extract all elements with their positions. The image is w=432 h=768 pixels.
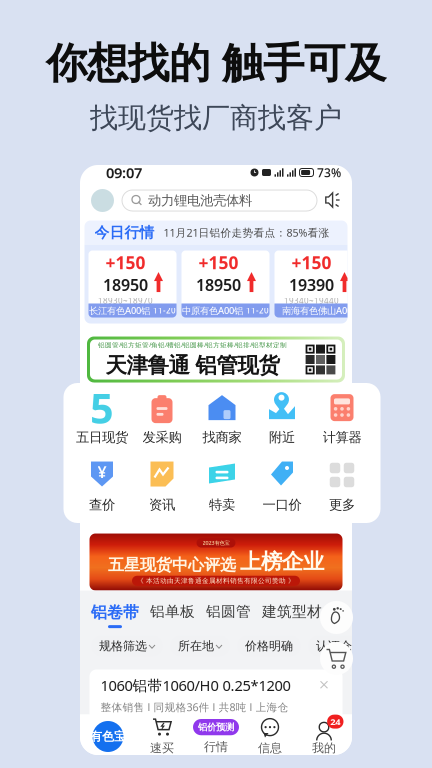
staticText: 更多 — [329, 496, 355, 513]
button[interactable]: 5 — [72, 393, 132, 445]
staticText: 找商家 — [202, 429, 241, 445]
button[interactable]: 铝圆管 — [206, 602, 251, 620]
button[interactable]: 特卖 — [192, 460, 252, 513]
staticText: +150 — [198, 251, 238, 274]
staticText: 1060铝带1060/H0 0.25*1200 — [100, 675, 290, 695]
button[interactable]: ¥ — [72, 460, 132, 513]
button[interactable]: 价格明确 — [237, 635, 301, 656]
staticText: 有色宝 — [90, 729, 126, 744]
button[interactable]: 更多 — [312, 460, 372, 513]
button[interactable]: 有色宝 — [81, 715, 135, 757]
staticText: 所在地 — [178, 639, 214, 653]
staticText: 找现货找厂商找客户 — [90, 101, 342, 135]
button[interactable]: 信息 — [243, 715, 297, 757]
staticText: 附近 — [269, 429, 295, 445]
button[interactable]: 铝单板 — [150, 602, 195, 620]
staticText: 09:07 — [106, 163, 142, 182]
staticText: 18950 — [103, 274, 148, 295]
staticText: 11-20 — [246, 305, 269, 316]
staticText: 上榜企业 — [240, 548, 324, 575]
button[interactable]: +150 — [88, 250, 176, 317]
staticText: 速买 — [150, 741, 174, 755]
staticText: +150 — [105, 251, 145, 274]
staticText: 2023有色宝 — [202, 539, 229, 546]
staticText: 中原有色A00铝 — [182, 304, 243, 317]
staticText: 特卖 — [209, 496, 235, 513]
staticText: 你想找的 触手可及 — [46, 38, 386, 89]
staticText: 5 — [90, 380, 114, 435]
staticText: 长江有色A00铝 — [89, 304, 150, 317]
button[interactable]: 速买 — [135, 715, 189, 757]
staticText: 认证仓 — [316, 639, 352, 653]
button[interactable]: 一口价 — [252, 460, 312, 513]
button[interactable]: 动力锂电池壳体料 — [122, 190, 317, 211]
staticText: 价格明确 — [245, 639, 293, 653]
staticText: 我的 — [312, 741, 336, 755]
staticText: 规格筛选 — [99, 639, 147, 653]
staticText: 行情 — [204, 739, 228, 754]
staticText: 资讯 — [149, 496, 175, 513]
button[interactable]: 铝卷带 — [91, 602, 139, 628]
staticText: 铝圆管/铝方矩管/角铝/槽铝/铝圆棒/铝方矩棒/铝排/铝型材定制 — [98, 340, 287, 349]
button[interactable]: 铝圆管/铝方矩管/角铝/槽铝/铝圆棒/铝方矩棒/铝排/铝型材定制 — [87, 336, 345, 382]
staticText: 18930~18970 — [98, 295, 153, 306]
button[interactable]: 建筑型材 — [262, 602, 322, 620]
button[interactable]: +150 — [274, 250, 362, 317]
staticText: 铝圆管 — [206, 602, 251, 620]
staticText: ¥ — [97, 461, 106, 483]
staticText: 铝卷带 — [91, 602, 139, 622]
staticText: 18950 — [196, 274, 241, 295]
staticText: 信息 — [258, 741, 282, 755]
button[interactable]: 找商家 — [192, 393, 252, 445]
button[interactable]: +150 — [181, 250, 269, 317]
button[interactable]: 铝价预测 — [189, 715, 243, 757]
staticText: 铝单板 — [150, 602, 195, 620]
staticText: 五星现货中心评选 — [108, 555, 236, 575]
staticText: 计算器 — [322, 429, 361, 445]
button[interactable]: 发采购 — [132, 393, 192, 445]
button[interactable]: Browsing history — [320, 601, 353, 634]
staticText: 24 — [330, 715, 340, 728]
staticText: 《 本活动由天津鲁通金属材料销售有限公司赞助 》 — [137, 577, 295, 585]
staticText: 动力锂电池壳体料 — [148, 192, 252, 209]
staticText: 11月21日铝价走势看点：85%看涨 — [163, 225, 329, 240]
staticText: 19340~19440 — [284, 295, 339, 306]
staticText: 整体销售 l 同规格36件 l 共8吨 l 上海仓 — [100, 700, 288, 714]
staticText: +150 — [291, 251, 331, 274]
button[interactable]: 资讯 — [132, 460, 192, 513]
staticText: 73% — [317, 164, 341, 180]
button[interactable]: 2023有色宝 — [89, 533, 342, 590]
button[interactable]: 铝 — [333, 602, 348, 620]
button[interactable]: Close — [317, 678, 331, 692]
staticText: 一口价 — [262, 496, 301, 513]
button[interactable]: 所在地 — [170, 635, 230, 656]
staticText: 查价 — [89, 496, 115, 513]
staticText: 铝价预测 — [198, 721, 234, 733]
button[interactable]: 24 — [297, 715, 351, 757]
staticText: 铝 — [333, 602, 348, 620]
staticText: 建筑型材 — [262, 602, 322, 620]
button[interactable]: 计算器 — [312, 393, 372, 445]
staticText: 发采购 — [142, 429, 181, 445]
button[interactable]: Broadcast — [325, 191, 341, 209]
staticText: 南海有色佛山A00 — [282, 304, 352, 317]
staticText: 今日行情 — [94, 223, 154, 241]
staticText: 19390 — [289, 274, 334, 295]
staticText: 11-20 — [153, 305, 176, 316]
button[interactable]: 规格筛选 — [91, 635, 163, 656]
button[interactable]: Shopping cart — [320, 642, 353, 675]
button[interactable]: 附近 — [252, 393, 312, 445]
button[interactable]: 认证仓 — [308, 635, 360, 656]
staticText: 天津鲁通 铝管现货 — [105, 352, 279, 378]
staticText: 五日现货 — [76, 429, 128, 445]
